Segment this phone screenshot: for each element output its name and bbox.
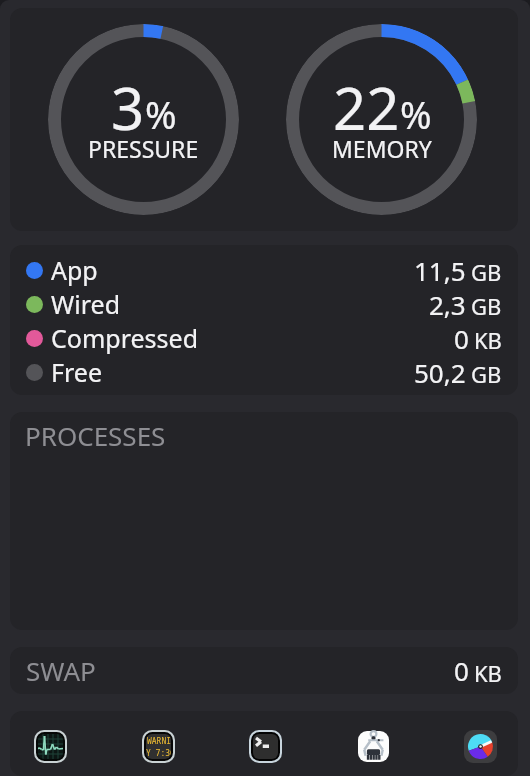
staticText: 0: [454, 321, 469, 355]
staticText: 0: [454, 653, 469, 688]
staticText: GB: [471, 291, 502, 321]
staticText: 50,2: [414, 355, 466, 389]
staticText: Y 7:36: [146, 747, 171, 758]
staticText: WARNI: [147, 735, 171, 746]
staticText: KB: [474, 658, 502, 688]
button[interactable]: Stats: [460, 726, 500, 766]
staticText: 3: [111, 68, 145, 147]
button[interactable]: SWAP: [10, 647, 518, 694]
button[interactable]: PROCESSES: [10, 412, 518, 630]
button[interactable]: 3: [48, 24, 239, 215]
staticText: %: [400, 88, 432, 140]
button[interactable]: Console: [138, 726, 178, 766]
staticText: GB: [471, 257, 502, 287]
staticText: MEMORY: [332, 133, 432, 164]
button[interactable]: App: [10, 253, 518, 287]
button[interactable]: Free: [10, 355, 518, 389]
button[interactable]: Compressed: [10, 321, 518, 355]
staticText: 22: [333, 68, 400, 147]
staticText: SWAP: [26, 653, 96, 688]
staticText: 2,3: [429, 287, 466, 321]
button[interactable]: System Information: [353, 726, 393, 766]
staticText: Wired: [51, 287, 121, 321]
staticText: PRESSURE: [88, 133, 199, 164]
staticText: App: [51, 253, 98, 287]
button[interactable]: Wired: [10, 287, 518, 321]
staticText: Free: [51, 355, 103, 389]
staticText: %: [145, 88, 177, 140]
staticText: 11,5: [414, 253, 466, 287]
button[interactable]: Terminal: [245, 726, 285, 766]
staticText: Compressed: [51, 321, 199, 355]
staticText: PROCESSES: [25, 418, 166, 453]
staticText: GB: [471, 359, 502, 389]
button[interactable]: 22: [286, 24, 477, 215]
staticText: KB: [474, 325, 502, 355]
button[interactable]: Activity Monitor: [30, 726, 70, 766]
